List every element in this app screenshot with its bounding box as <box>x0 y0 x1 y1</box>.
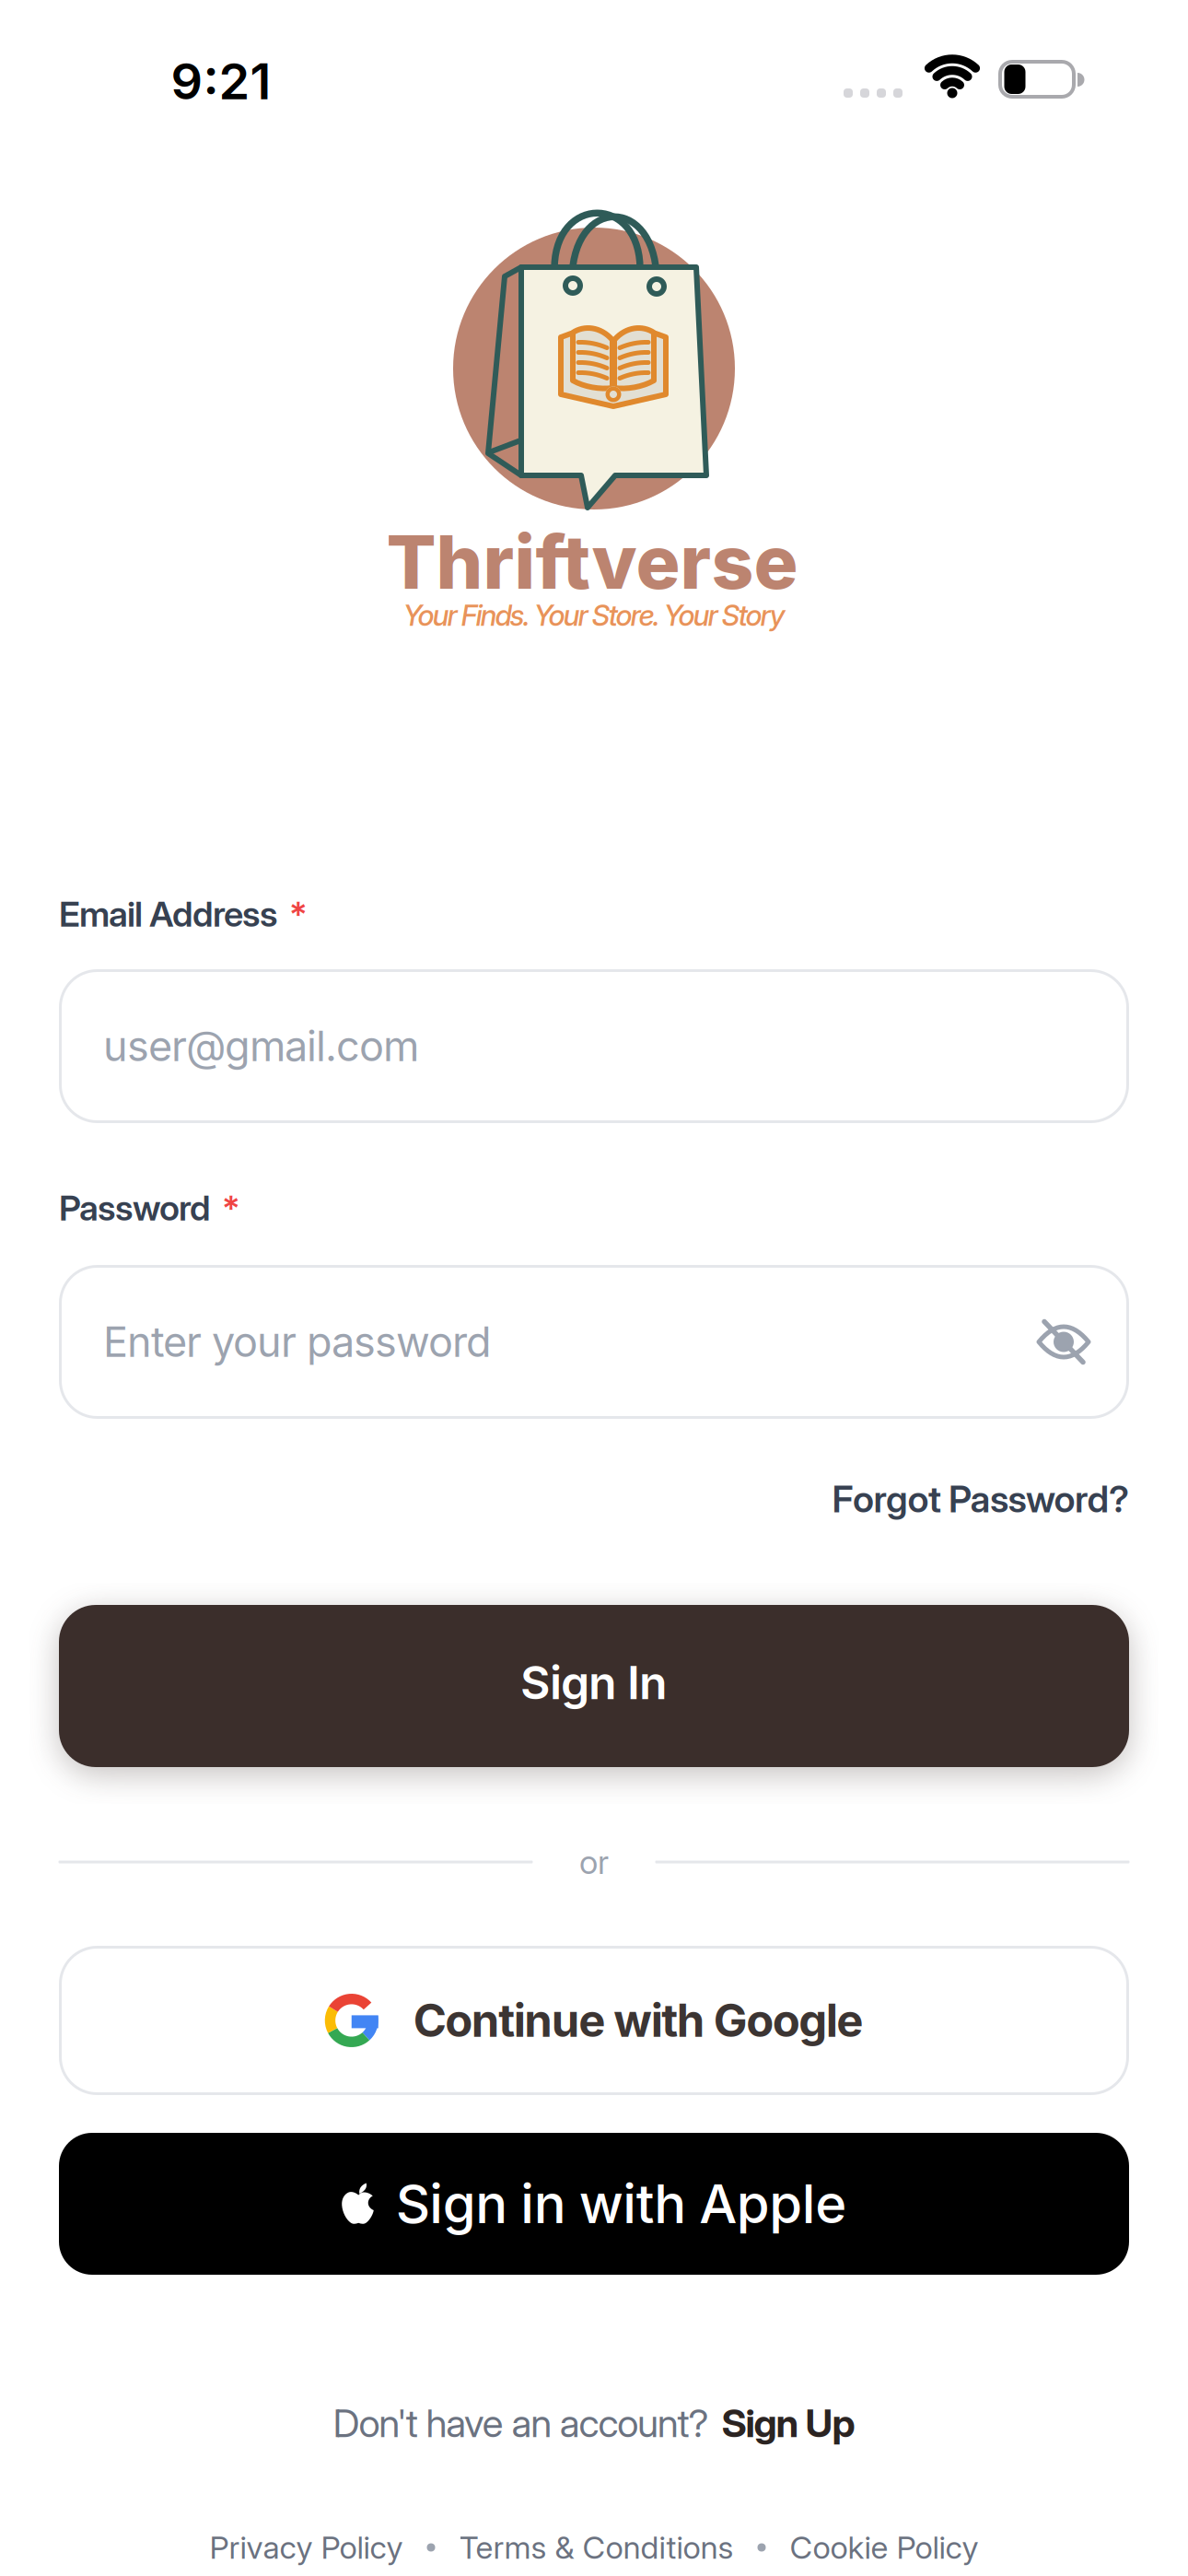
staticText: Email Address <box>59 893 278 935</box>
staticText: or <box>579 1842 609 1882</box>
staticText: Forgot Password? <box>832 1477 1129 1521</box>
staticText: Password <box>59 1187 211 1229</box>
button[interactable]: Sign in with Apple <box>59 2133 1129 2275</box>
staticText: Cookie Policy <box>790 2528 978 2566</box>
staticText: Sign in with Apple <box>396 2171 847 2236</box>
staticText: Terms & Conditions <box>459 2528 734 2566</box>
button[interactable]: Cookie Policy <box>790 2528 978 2566</box>
staticText: Privacy Policy <box>210 2528 403 2566</box>
staticText: 9:21 <box>171 51 271 111</box>
button[interactable]: Terms & Conditions <box>459 2528 734 2566</box>
button[interactable]: Show password <box>1035 1320 1092 1364</box>
staticText: Continue with Google <box>413 1993 863 2048</box>
staticText: Sign In <box>520 1654 668 1710</box>
staticText: Thriftverse <box>386 517 798 607</box>
button[interactable]: Continue with Google <box>59 1946 1129 2095</box>
button[interactable]: Sign In <box>59 1605 1129 1767</box>
button[interactable]: Privacy Policy <box>210 2528 403 2566</box>
staticText: Don't have an account? <box>333 2400 709 2446</box>
staticText: Sign Up <box>721 2400 855 2446</box>
staticText: user@gmail.com <box>103 1021 419 1071</box>
button[interactable]: Sign Up <box>721 2400 855 2446</box>
staticText: * <box>289 893 308 935</box>
staticText: * <box>222 1187 240 1229</box>
staticText: Enter your password <box>103 1317 492 1367</box>
button[interactable]: Forgot Password? <box>832 1477 1129 1521</box>
staticText: Your Finds. Your Store. Your Story <box>403 598 785 633</box>
